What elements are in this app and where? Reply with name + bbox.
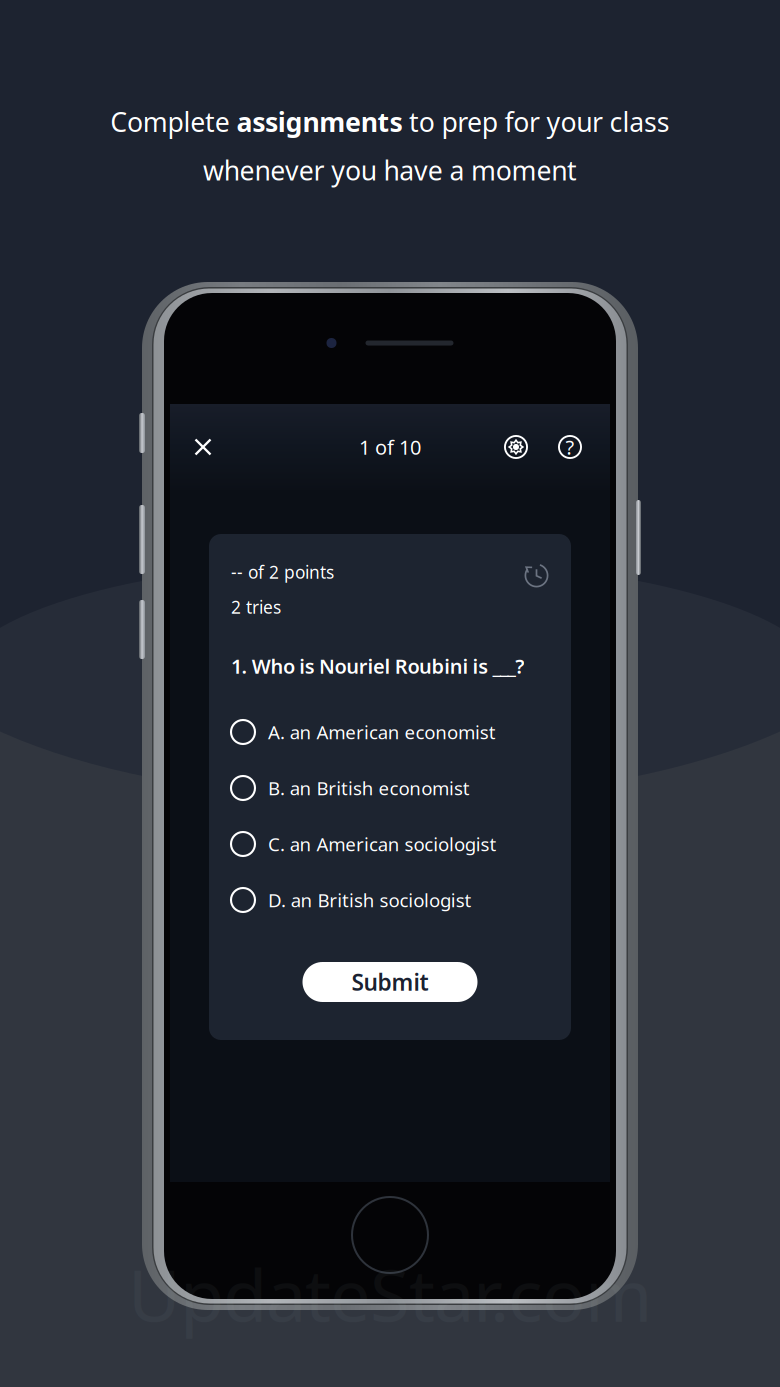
button[interactable]: Help <box>550 424 590 470</box>
staticText: A. an American economist <box>268 720 496 744</box>
staticText: D. an British sociologist <box>268 888 472 912</box>
button[interactable]: B. an British economist <box>231 760 549 816</box>
button[interactable]: D. an British sociologist <box>231 872 549 928</box>
staticText: C. an American sociologist <box>268 832 496 856</box>
button[interactable]: A. an American economist <box>231 704 549 760</box>
staticText: 1. Who is Nouriel Roubini is ___? <box>231 653 524 679</box>
button[interactable]: Settings <box>496 424 536 470</box>
staticText: ? <box>565 434 574 460</box>
staticText: -- of 2 points <box>231 560 334 583</box>
staticText: Complete assignments to prep for your cl… <box>110 104 670 139</box>
staticText: B. an British economist <box>268 776 470 800</box>
staticText: UpdateStar.com <box>128 1246 652 1342</box>
staticText: Submit <box>351 967 428 997</box>
button[interactable]: Close <box>181 424 225 470</box>
staticText: 2 tries <box>231 595 281 618</box>
button[interactable]: C. an American sociologist <box>231 816 549 872</box>
staticText: whenever you have a moment <box>203 152 577 188</box>
button[interactable]: Submit <box>302 962 477 1002</box>
staticText: 1 of 10 <box>359 434 421 460</box>
